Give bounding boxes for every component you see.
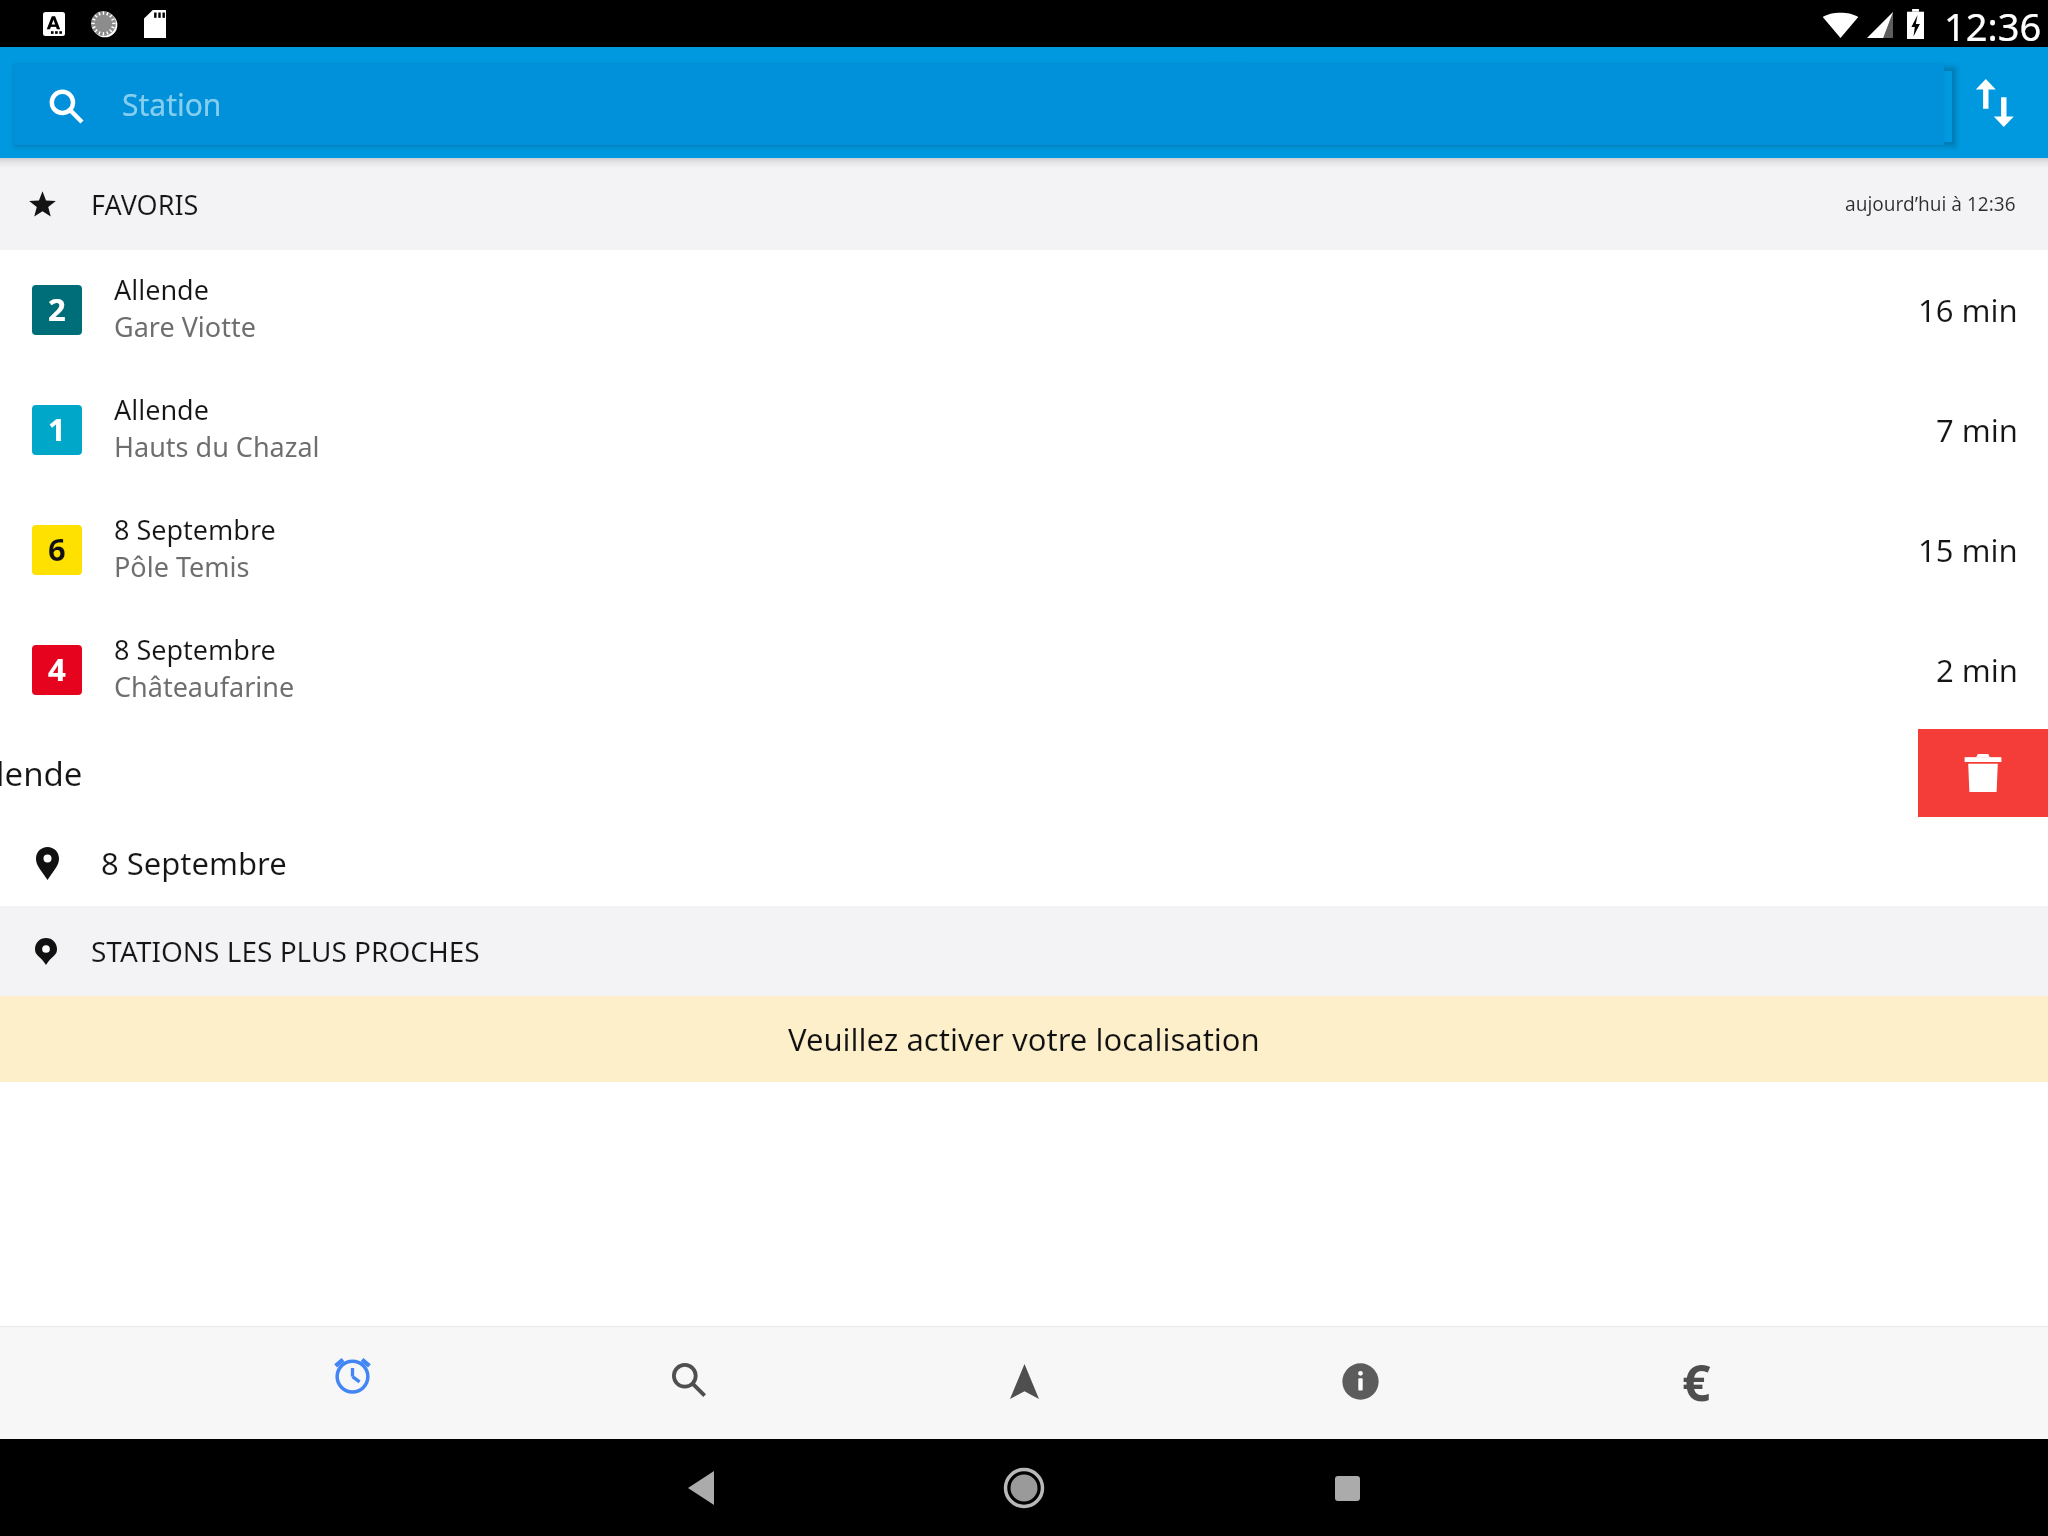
staticText: Châteaufarine: [114, 668, 295, 705]
button[interactable]: Home: [989, 1453, 1059, 1523]
button[interactable]: Fares: [1528, 1326, 1864, 1439]
staticText: 16 min: [1918, 289, 2018, 331]
staticText: Pôle Temis: [114, 548, 250, 585]
button[interactable]: Navigate: [856, 1326, 1192, 1439]
staticText: STATIONS LES PLUS PROCHES: [91, 932, 480, 970]
staticText: Gare Viotte: [114, 308, 256, 345]
staticText: Allende: [114, 391, 209, 428]
staticText: aujourd’hui à 12:36: [1845, 191, 2016, 217]
button[interactable]: Delete: [1918, 729, 2048, 817]
staticText: 12:36: [1944, 0, 2042, 47]
staticText: Allende: [114, 271, 209, 308]
button[interactable]: 8 Septembre: [0, 820, 2048, 906]
staticText: 8 Septembre: [101, 842, 287, 884]
button[interactable]: 6: [0, 490, 2048, 610]
button[interactable]: Recents: [1312, 1453, 1382, 1523]
staticText: Veuillez activer votre localisation: [788, 1018, 1260, 1060]
staticText: 2 min: [1936, 649, 2018, 691]
button[interactable]: Search: [520, 1326, 856, 1439]
button[interactable]: STATIONS LES PLUS PROCHES: [0, 906, 2048, 996]
button[interactable]: 1: [0, 370, 2048, 490]
button[interactable]: 2: [0, 250, 2048, 370]
staticText: Hauts du Chazal: [114, 428, 320, 465]
staticText: 8 Septembre: [114, 511, 276, 548]
staticText: Station: [122, 84, 222, 125]
staticText: €: [1682, 1348, 1711, 1416]
staticText: 15 min: [1918, 529, 2018, 571]
staticText: 8 Septembre: [114, 631, 276, 668]
button[interactable]: lende: [0, 730, 2048, 820]
button[interactable]: Search a station: [14, 64, 1944, 145]
button[interactable]: Info: [1192, 1326, 1528, 1439]
staticText: lende: [0, 751, 83, 796]
button[interactable]: FAVORIS: [0, 158, 2048, 250]
staticText: 1: [48, 408, 66, 450]
button[interactable]: Swap direction: [1956, 64, 2034, 142]
staticText: 6: [48, 528, 66, 570]
staticText: 7 min: [1936, 409, 2018, 451]
staticText: 4: [48, 648, 66, 690]
button[interactable]: Back: [666, 1453, 736, 1523]
staticText: FAVORIS: [91, 186, 199, 223]
button[interactable]: Departures: [184, 1326, 520, 1439]
staticText: 2: [48, 288, 66, 330]
button[interactable]: 4: [0, 610, 2048, 730]
